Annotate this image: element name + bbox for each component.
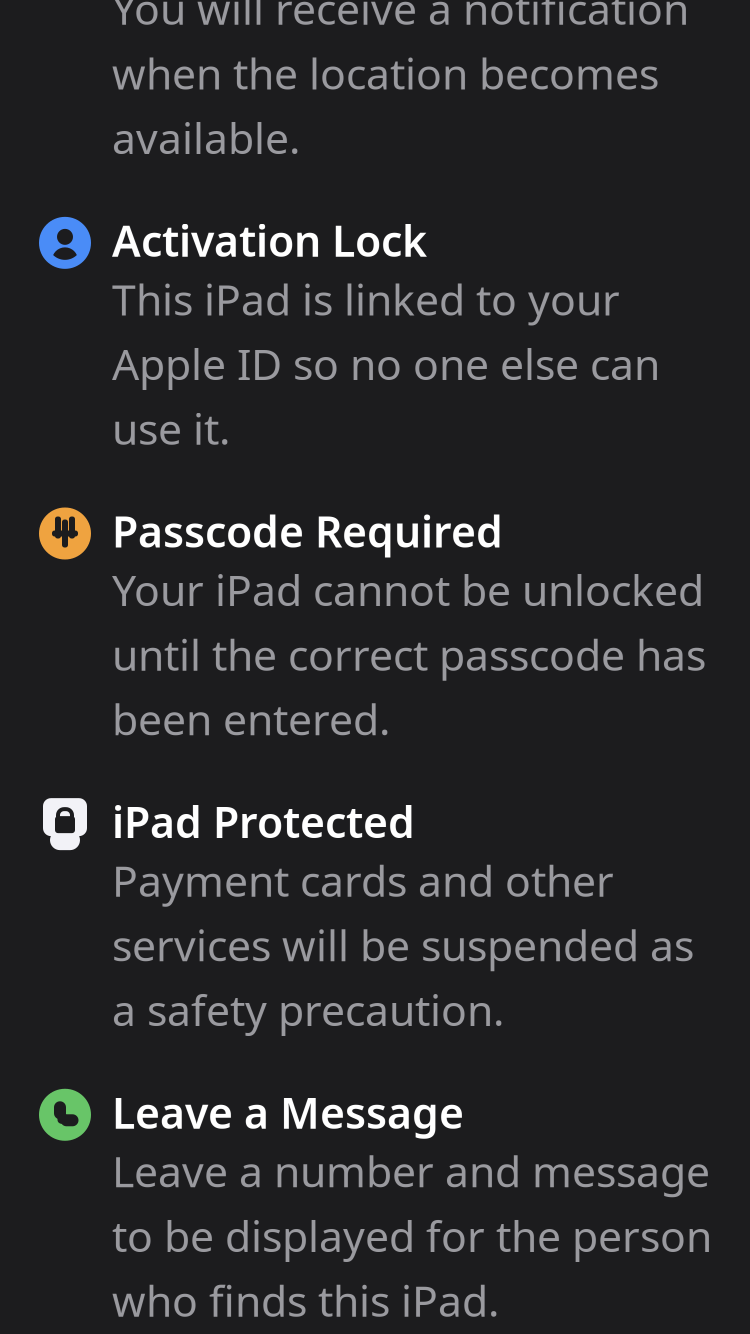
staticText: iPad Protected — [112, 793, 415, 850]
staticText: Leave a Message — [112, 1084, 464, 1140]
staticText: You will receive a notification when the… — [112, 0, 689, 166]
staticText: This iPad is linked to your Apple ID so … — [112, 270, 660, 456]
staticText: Leave a number and message to be display… — [112, 1142, 712, 1328]
staticText: Payment cards and other services will be… — [112, 852, 694, 1038]
staticText: Passcode Required — [112, 502, 503, 559]
staticText: Activation Lock — [112, 212, 427, 269]
staticText: Your iPad cannot be unlocked until the c… — [112, 561, 706, 747]
